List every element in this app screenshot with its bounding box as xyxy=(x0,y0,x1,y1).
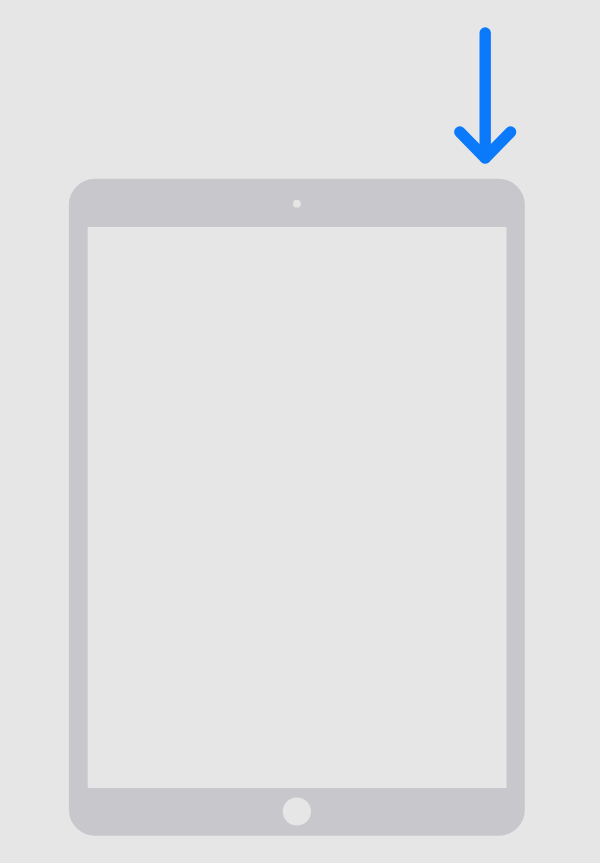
button[interactable]: Tablet illustration with a blue arrow po… xyxy=(0,0,600,863)
